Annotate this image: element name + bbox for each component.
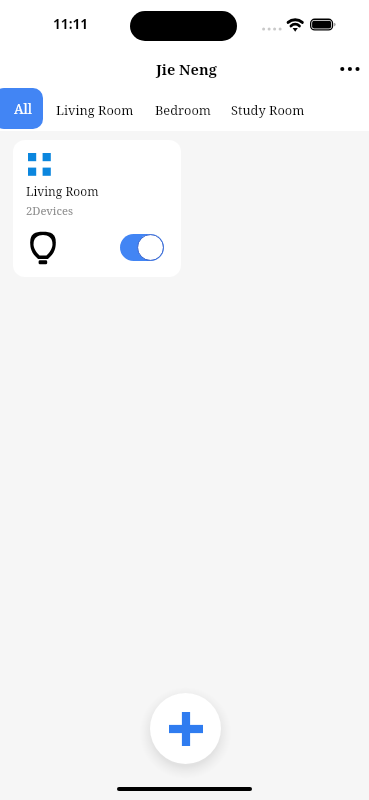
- staticText: 11:11: [53, 14, 89, 33]
- button[interactable]: Bedroom: [149, 89, 217, 130]
- button[interactable]: Toggle Living Room lights: [120, 234, 164, 261]
- button[interactable]: Study Room: [225, 89, 311, 130]
- button[interactable]: Add device: [150, 693, 221, 764]
- staticText: 2Devices: [26, 203, 73, 218]
- staticText: Living Room: [56, 101, 134, 118]
- button[interactable]: All: [0, 88, 43, 129]
- button[interactable]: More options: [331, 54, 369, 84]
- staticText: Bedroom: [155, 101, 211, 118]
- staticText: Living Room: [26, 183, 99, 199]
- staticText: Jie Neng: [156, 59, 217, 79]
- button[interactable]: Living Room: [50, 89, 140, 130]
- staticText: Study Room: [231, 101, 305, 118]
- staticText: All: [14, 100, 32, 118]
- button[interactable]: Living Room: [13, 140, 181, 277]
